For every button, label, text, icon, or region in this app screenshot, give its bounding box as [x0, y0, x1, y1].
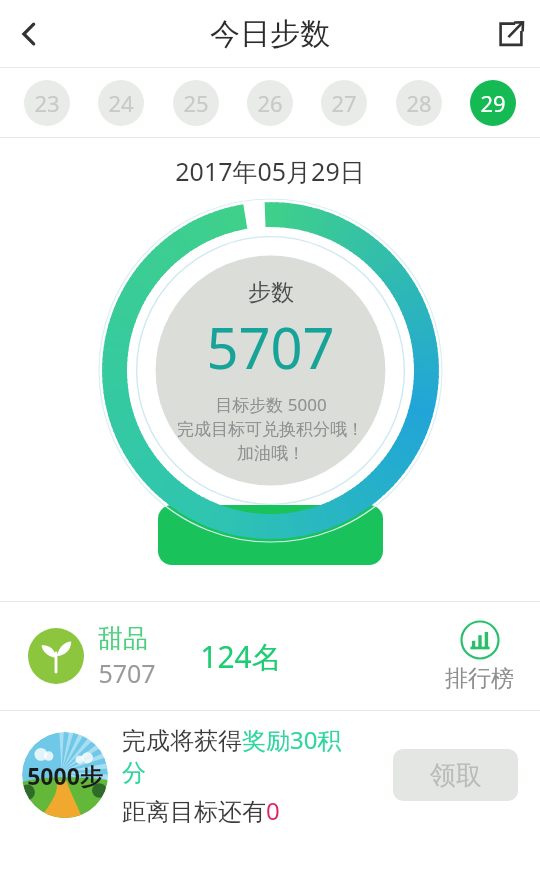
staticText: 完成目标可兑换积分哦！	[177, 419, 364, 440]
staticText: 今日步数	[210, 15, 330, 53]
staticText: 步数	[248, 278, 294, 307]
button[interactable]: 29	[470, 80, 516, 126]
staticText: 甜品	[98, 623, 148, 654]
button[interactable]: 26	[247, 80, 293, 126]
staticText: 领取	[430, 759, 482, 792]
staticText: 27	[331, 88, 357, 118]
staticText: 5000步	[27, 760, 103, 791]
button[interactable]: 27	[321, 80, 367, 126]
staticText: 25	[183, 88, 209, 118]
staticText: 加油哦！	[237, 443, 305, 464]
button[interactable]: 23	[24, 80, 70, 126]
staticText: 完成将获得奖励30积分	[122, 723, 352, 788]
staticText: 2017年05月29日	[175, 154, 365, 188]
staticText: 距离目标还有0	[122, 794, 280, 827]
staticText: 目标步数 5000	[215, 393, 327, 416]
button[interactable]: 领取	[393, 749, 518, 801]
button[interactable]	[158, 505, 383, 565]
button[interactable]: Back	[0, 5, 58, 63]
staticText: 排行榜	[445, 664, 514, 693]
staticText: 5707	[206, 309, 335, 385]
button[interactable]: 25	[173, 80, 219, 126]
button[interactable]: 28	[396, 80, 442, 126]
staticText: 26	[257, 88, 283, 118]
button[interactable]: 24	[98, 80, 144, 126]
staticText: 29	[480, 88, 506, 118]
button[interactable]: Share	[482, 5, 540, 63]
button[interactable]: 排行榜	[445, 620, 514, 693]
staticText: 124名	[200, 636, 282, 677]
staticText: 24	[108, 88, 134, 118]
staticText: 5707	[98, 656, 156, 690]
staticText: 28	[406, 88, 432, 118]
staticText: 23	[34, 88, 60, 118]
